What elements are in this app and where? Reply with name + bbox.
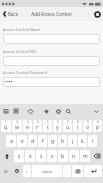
- button[interactable]: space: [32, 165, 62, 177]
- staticText: x: [29, 153, 32, 160]
- staticText: p: [96, 124, 100, 131]
- staticText: 4: [37, 120, 39, 124]
- button[interactable]: Camera: [72, 165, 83, 177]
- staticText: Access Control NO: [3, 49, 36, 54]
- staticText: Access Control Password: [3, 70, 48, 75]
- staticText: h: [61, 138, 65, 145]
- button[interactable]: g: [48, 135, 57, 147]
- button[interactable]: 6: [53, 120, 62, 132]
- button[interactable]: Shift: [1, 150, 13, 162]
- button[interactable]: b: [58, 150, 68, 162]
- staticText: 9: [87, 120, 89, 124]
- staticText: z: [18, 153, 21, 160]
- button[interactable]: Clipboard: [1, 106, 11, 116]
- button[interactable]: Emoji: [12, 165, 22, 177]
- button[interactable]: Enter: [84, 165, 102, 177]
- staticText: k: [81, 138, 84, 145]
- staticText: Access Control Name: [3, 27, 41, 32]
- button[interactable]: n: [69, 150, 79, 162]
- button[interactable]: 5: [43, 120, 52, 132]
- button[interactable]: s: [17, 135, 27, 147]
- button[interactable]: Search: [63, 106, 73, 116]
- staticText: u: [66, 124, 70, 131]
- staticText: l: [92, 138, 94, 145]
- button[interactable]: 4: [33, 120, 42, 132]
- staticText: m: [83, 153, 88, 160]
- staticText: i: [77, 124, 79, 131]
- staticText: g: [51, 138, 55, 145]
- button[interactable]: Back: [0, 7, 21, 21]
- staticText: r: [36, 124, 39, 131]
- button[interactable]: f: [38, 135, 47, 147]
- button[interactable]: Shortcuts: [41, 106, 51, 116]
- staticText: n: [72, 153, 76, 160]
- staticText: Add Access Control: [31, 11, 72, 17]
- staticText: b: [61, 153, 65, 160]
- staticText: y: [56, 124, 59, 131]
- button[interactable]: a: [6, 135, 16, 147]
- button[interactable]: [3, 56, 100, 66]
- staticText: q: [4, 124, 8, 131]
- staticText: 3: [27, 120, 29, 124]
- button[interactable]: Settings: [91, 7, 103, 21]
- button[interactable]: 2: [12, 120, 22, 132]
- button[interactable]: v: [47, 150, 57, 162]
- staticText: 5: [47, 120, 49, 124]
- button[interactable]: j: [68, 135, 77, 147]
- staticText: 1: [5, 120, 7, 124]
- button[interactable]: Translate: [25, 106, 35, 116]
- button[interactable]: h: [58, 135, 67, 147]
- staticText: s: [21, 138, 24, 145]
- button[interactable]: d: [28, 135, 37, 147]
- staticText: o: [86, 124, 90, 131]
- button[interactable]: 1: [1, 120, 11, 132]
- staticText: space: [42, 169, 53, 174]
- button[interactable]: c: [36, 150, 46, 162]
- staticText: t: [47, 124, 49, 131]
- staticText: 0: [97, 120, 99, 124]
- button[interactable]: x: [25, 150, 35, 162]
- button[interactable]: l: [88, 135, 97, 147]
- button[interactable]: Symbols: [1, 165, 11, 177]
- staticText: ••••: [5, 79, 13, 86]
- staticText: f: [42, 138, 44, 145]
- button[interactable]: Keyboard settings: [53, 106, 63, 116]
- button[interactable]: 0: [93, 120, 102, 132]
- button[interactable]: z: [14, 150, 24, 162]
- staticText: ,: [26, 168, 28, 175]
- staticText: 8: [77, 120, 79, 124]
- button[interactable]: 9: [83, 120, 92, 132]
- staticText: 2: [16, 120, 18, 124]
- button[interactable]: .: [63, 165, 71, 177]
- staticText: c: [40, 153, 43, 160]
- button[interactable]: Sticker: [11, 106, 21, 116]
- button[interactable]: [3, 34, 100, 44]
- button[interactable]: Collapse keyboard: [91, 106, 101, 116]
- staticText: e: [26, 124, 29, 131]
- staticText: w: [15, 124, 19, 131]
- staticText: d: [31, 138, 35, 145]
- button[interactable]: ,: [23, 165, 31, 177]
- button[interactable]: m: [80, 150, 90, 162]
- button[interactable]: ••••: [3, 77, 100, 87]
- staticText: Back: [8, 11, 18, 17]
- staticText: 6: [57, 120, 59, 124]
- staticText: a: [10, 138, 13, 145]
- button[interactable]: 7: [63, 120, 72, 132]
- staticText: .: [66, 168, 68, 175]
- button[interactable]: k: [78, 135, 87, 147]
- button[interactable]: 3: [23, 120, 32, 132]
- staticText: v: [51, 153, 54, 160]
- staticText: j: [72, 138, 74, 145]
- button[interactable]: Backspace: [91, 150, 102, 162]
- staticText: !#: [4, 169, 8, 174]
- button[interactable]: 8: [73, 120, 82, 132]
- staticText: 7: [67, 120, 69, 124]
